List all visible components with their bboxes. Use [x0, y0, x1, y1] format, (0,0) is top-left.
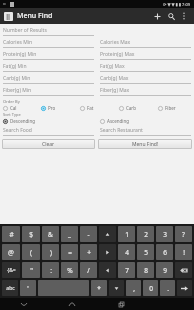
- button[interactable]: Clear: [2, 139, 95, 149]
- button[interactable]: Home: [64, 298, 80, 310]
- staticText: !: [183, 248, 185, 257]
- staticText: Search Food: [3, 127, 32, 134]
- button[interactable]: ,: [126, 280, 141, 296]
- button[interactable]: +: [80, 244, 97, 260]
- staticText: abc: [6, 285, 15, 292]
- button[interactable]: Descending: [3, 118, 97, 124]
- button[interactable]: right: [99, 244, 116, 260]
- button[interactable]: 8: [137, 262, 154, 278]
- staticText: -: [87, 230, 90, 239]
- staticText: 3: [163, 230, 167, 239]
- staticText: Calories Min: [3, 39, 33, 46]
- staticText: /: [87, 266, 90, 275]
- button[interactable]: ': [20, 280, 36, 296]
- button[interactable]: !: [175, 244, 192, 260]
- button[interactable]: Back: [16, 298, 32, 310]
- staticText: 6: [163, 248, 167, 257]
- staticText: Number of Results: [3, 27, 47, 34]
- staticText: Fiber(g) Max: [100, 87, 130, 94]
- staticText: Order By: [3, 99, 20, 104]
- button[interactable]: *: [91, 280, 107, 296]
- button[interactable]: 2: [137, 226, 154, 242]
- staticText: ": [30, 266, 33, 275]
- button[interactable]: 5: [137, 244, 154, 260]
- button[interactable]: $: [22, 226, 40, 242]
- staticText: Fiber: [165, 105, 176, 111]
- button[interactable]: {&=: [2, 262, 20, 278]
- button[interactable]: Calories Max: [100, 38, 191, 50]
- button[interactable]: 1: [118, 226, 135, 242]
- button[interactable]: ?: [175, 226, 192, 242]
- button[interactable]: /: [80, 262, 97, 278]
- button[interactable]: Protein(g) Min: [3, 50, 94, 62]
- staticText: Carb: [126, 105, 136, 111]
- button[interactable]: 3: [156, 226, 173, 242]
- button[interactable]: 4: [118, 244, 135, 260]
- button[interactable]: Fiber(g) Max: [100, 86, 191, 98]
- staticText: ?: [182, 230, 185, 239]
- button[interactable]: &: [42, 226, 59, 242]
- button[interactable]: Search Restaurant: [100, 126, 191, 138]
- staticText: @: [8, 248, 14, 257]
- button[interactable]: =: [61, 244, 78, 260]
- button[interactable]: Carb: [119, 105, 155, 111]
- button[interactable]: _: [61, 226, 78, 242]
- button[interactable]: Ascending: [100, 118, 194, 124]
- staticText: 8: [144, 266, 148, 275]
- button[interactable]: del: [175, 262, 192, 278]
- button[interactable]: left: [99, 262, 116, 278]
- button[interactable]: 0: [143, 280, 158, 296]
- button[interactable]: ): [42, 244, 59, 260]
- button[interactable]: 7: [118, 262, 135, 278]
- button[interactable]: More options: [178, 10, 190, 22]
- button[interactable]: abc: [2, 280, 18, 296]
- button[interactable]: Add: [150, 9, 164, 23]
- button[interactable]: Number of Results: [3, 26, 94, 38]
- button[interactable]: Carb(g) Min: [3, 74, 94, 86]
- button[interactable]: Calories Min: [3, 38, 94, 50]
- button[interactable]: 6: [156, 244, 173, 260]
- staticText: _: [68, 230, 71, 239]
- staticText: .: [167, 284, 169, 293]
- button[interactable]: %: [61, 262, 78, 278]
- button[interactable]: Recent apps: [113, 298, 129, 310]
- button[interactable]: Cal: [3, 105, 38, 111]
- staticText: ,: [133, 284, 135, 293]
- staticText: Fat(g) Min: [3, 63, 27, 70]
- button[interactable]: enter: [177, 280, 192, 296]
- staticText: 2: [144, 230, 148, 239]
- button[interactable]: ": [22, 262, 40, 278]
- button[interactable]: Carb(g) Max: [100, 74, 191, 86]
- button[interactable]: Fat: [80, 105, 116, 111]
- staticText: Clear: [42, 141, 55, 148]
- button[interactable]: Fat(g) Max: [100, 62, 191, 74]
- button[interactable]: Menu Find!: [98, 139, 192, 149]
- button[interactable]: .: [160, 280, 175, 296]
- staticText: 0: [149, 284, 153, 293]
- button[interactable]: down: [109, 280, 124, 296]
- button[interactable]: Protein(g) Max: [100, 50, 191, 62]
- button[interactable]: #: [2, 226, 20, 242]
- staticText: Descending: [10, 118, 35, 124]
- staticText: 7: [125, 266, 129, 275]
- button[interactable]: (: [22, 244, 40, 260]
- button[interactable]: Fiber(g) Min: [3, 86, 94, 98]
- button[interactable]: Search: [164, 9, 178, 23]
- button[interactable]: @: [2, 244, 20, 260]
- button[interactable]: Fat(g) Min: [3, 62, 94, 74]
- staticText: Calories Max: [100, 39, 131, 46]
- button[interactable]: 9: [156, 262, 173, 278]
- button[interactable]: Search Food: [3, 126, 94, 138]
- staticText: Carb(g) Min: [3, 75, 31, 82]
- staticText: Menu Find: [17, 11, 53, 21]
- button[interactable]: -: [80, 226, 97, 242]
- button[interactable]: :: [42, 262, 59, 278]
- button[interactable]: Pro: [41, 105, 77, 111]
- button[interactable]: Fiber: [158, 105, 194, 111]
- staticText: Fiber(g) Min: [3, 87, 32, 94]
- staticText: Fat: [87, 105, 94, 111]
- staticText: 1: [125, 230, 129, 239]
- button[interactable]: up: [99, 226, 116, 242]
- staticText: {&=: [7, 267, 16, 274]
